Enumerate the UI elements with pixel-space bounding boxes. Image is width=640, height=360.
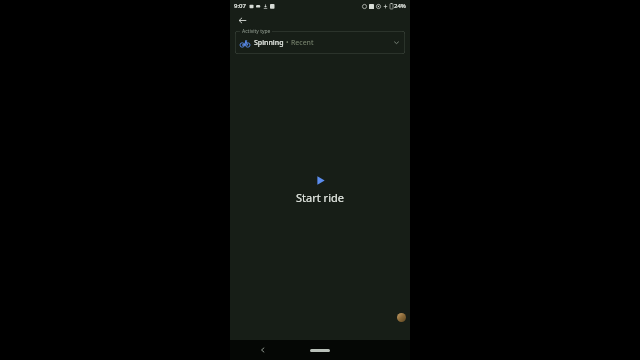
button[interactable]: Spinning (235, 31, 405, 54)
staticText: Activity type (242, 28, 271, 35)
staticText: Spinning (254, 38, 284, 48)
button[interactable]: Back (256, 343, 270, 357)
button[interactable]: Back (234, 12, 250, 28)
button[interactable]: Home (310, 349, 330, 352)
button[interactable]: Profile (397, 313, 406, 322)
staticText: • (286, 38, 289, 48)
staticText: Start ride (296, 190, 344, 205)
staticText: 9:07 (234, 2, 246, 10)
button[interactable]: Start ride (288, 170, 352, 209)
staticText: Recent (291, 38, 314, 48)
staticText: 24% (394, 2, 406, 10)
